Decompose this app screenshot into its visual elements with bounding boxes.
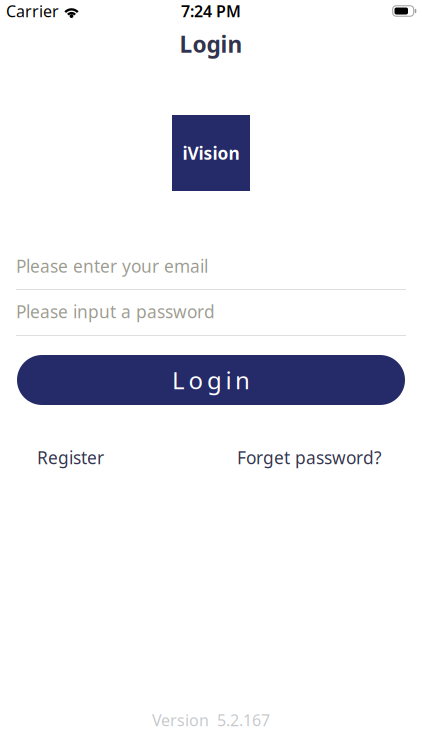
staticText: iVision [182,141,239,164]
button[interactable]: Register [37,446,104,469]
staticText: Login [179,29,242,59]
staticText: Please input a password [16,300,215,323]
staticText: Carrier [6,0,59,22]
staticText: Please enter your email [16,254,208,277]
staticText: Forget password? [237,446,382,469]
textField[interactable]: Please enter your email [16,254,406,277]
textField[interactable]: Please input a password [16,300,406,323]
staticText: Version 5.2.167 [152,709,270,731]
button[interactable]: Login [17,355,405,405]
staticText: Register [37,446,104,469]
staticText: Login [172,364,250,396]
button[interactable]: Forget password? [237,446,382,469]
staticText: 7:24 PM [181,0,241,22]
